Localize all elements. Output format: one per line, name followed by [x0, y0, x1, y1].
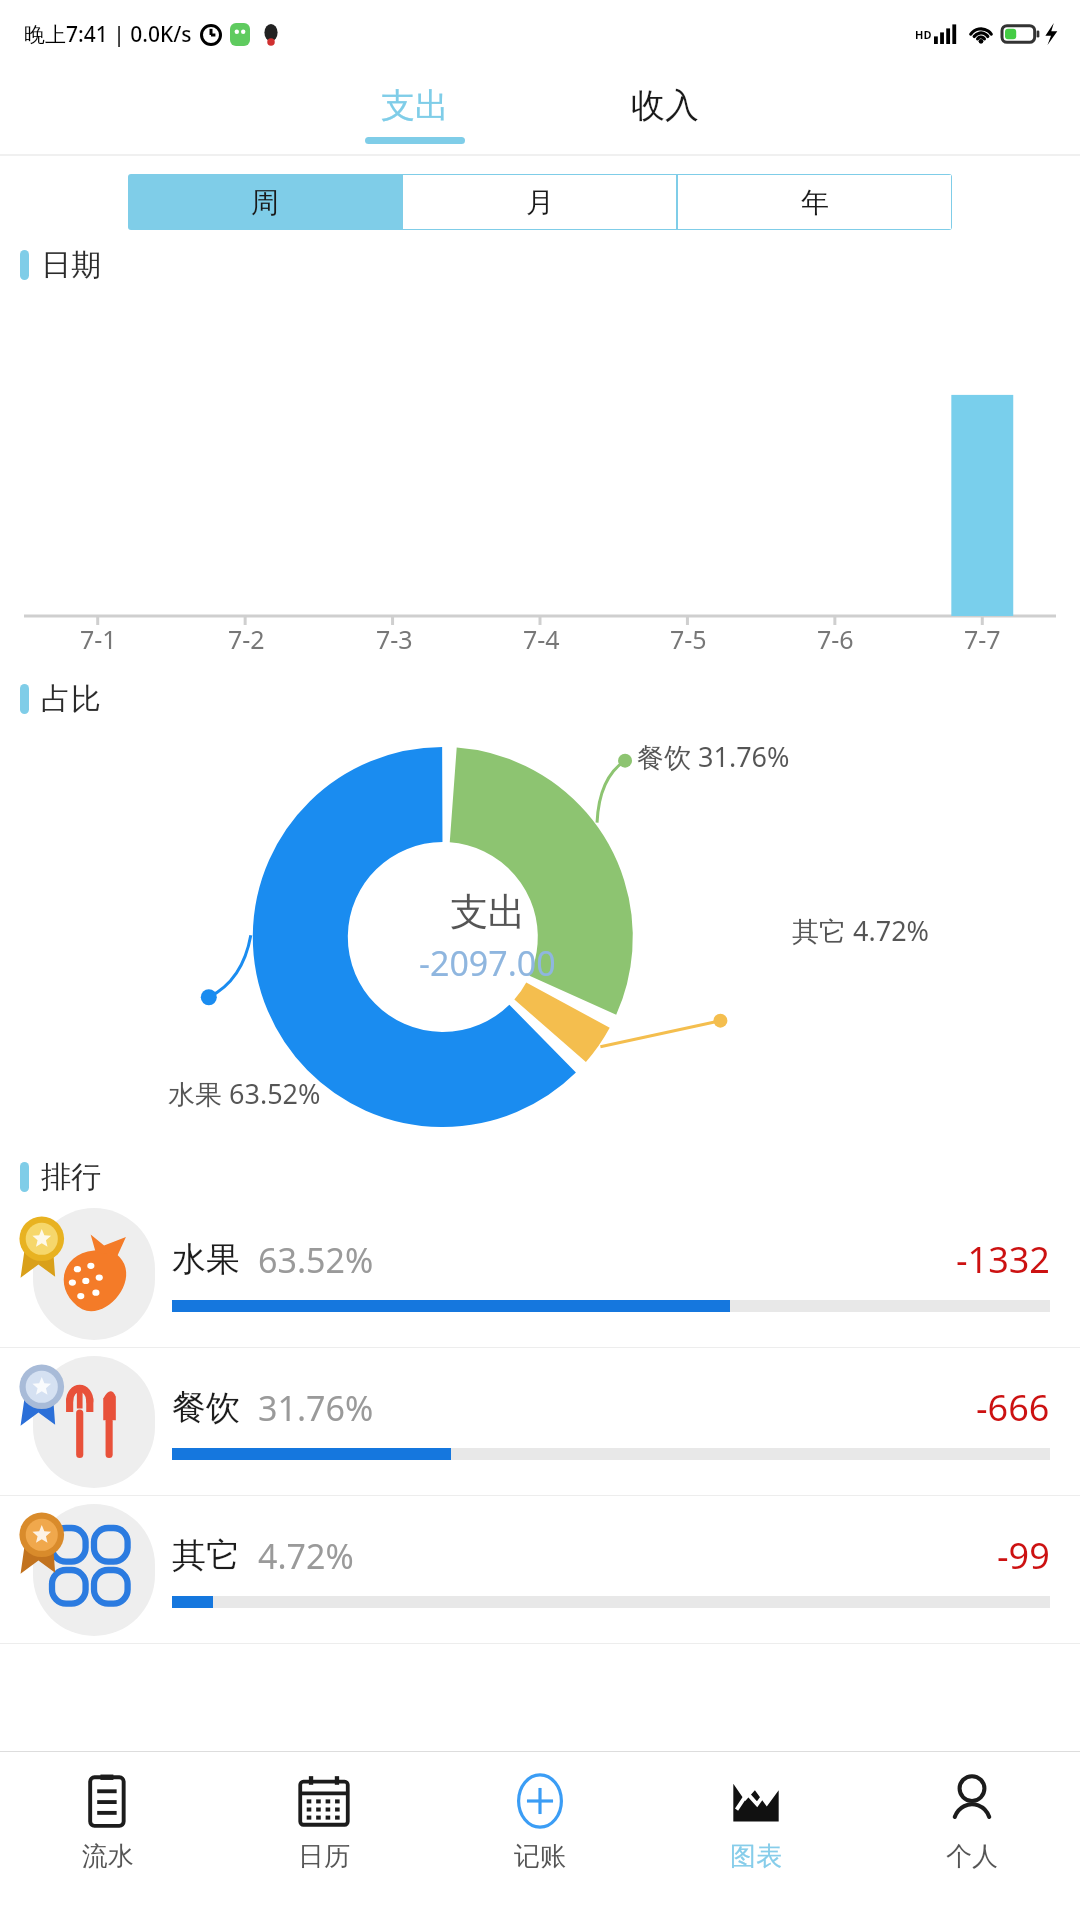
staticText: 占比: [41, 680, 101, 718]
staticText: 流水: [82, 1840, 134, 1873]
staticText: 7-6: [817, 622, 854, 656]
staticText: 周: [251, 185, 279, 220]
staticText: 月: [526, 185, 554, 220]
staticText: -1332: [956, 1235, 1050, 1284]
staticText: 排行: [41, 1158, 101, 1196]
button[interactable]: 年: [677, 174, 952, 230]
staticText: 7-4: [523, 622, 560, 656]
button[interactable]: 流水: [0, 1752, 216, 1920]
button[interactable]: 其它: [0, 1496, 1080, 1643]
staticText: -99: [997, 1531, 1050, 1580]
staticText: 支出: [450, 888, 526, 936]
button[interactable]: 周: [128, 174, 402, 230]
staticText: 7-5: [670, 622, 707, 656]
staticText: 7-2: [228, 622, 265, 656]
staticText: HD: [915, 27, 932, 42]
staticText: 餐饮 31.76%: [637, 738, 790, 775]
staticText: 图表: [730, 1840, 782, 1873]
staticText: 其它 4.72%: [792, 912, 930, 949]
staticText: 水果 63.52%: [168, 1075, 321, 1112]
button[interactable]: 餐饮: [0, 1348, 1080, 1495]
staticText: 餐饮: [172, 1386, 240, 1429]
button[interactable]: 支出: [290, 68, 540, 154]
button[interactable]: 日历: [216, 1752, 432, 1920]
staticText: 7-1: [80, 622, 117, 656]
staticText: 支出: [381, 84, 449, 127]
staticText: 日期: [41, 246, 101, 284]
button[interactable]: 收入: [540, 68, 790, 154]
staticText: 晚上7:41 | 0.0K/s: [24, 20, 192, 49]
staticText: 收入: [631, 84, 699, 127]
button[interactable]: 个人: [864, 1752, 1080, 1920]
staticText: 7-3: [376, 622, 413, 656]
staticText: 7-7: [964, 622, 1001, 656]
staticText: 水果: [172, 1238, 240, 1281]
staticText: 4.72%: [258, 1533, 354, 1579]
staticText: 31.76%: [258, 1385, 374, 1431]
staticText: -2097.00: [419, 940, 556, 986]
staticText: 日历: [298, 1840, 350, 1873]
staticText: 其它: [172, 1534, 240, 1577]
button[interactable]: 图表: [648, 1752, 864, 1920]
staticText: 63.52%: [258, 1237, 374, 1283]
button[interactable]: 月: [402, 174, 677, 230]
button[interactable]: 水果: [0, 1200, 1080, 1347]
staticText: 个人: [946, 1840, 998, 1873]
staticText: -666: [976, 1383, 1050, 1432]
staticText: 年: [801, 185, 829, 220]
staticText: 记账: [514, 1840, 566, 1873]
button[interactable]: 记账: [432, 1752, 648, 1920]
